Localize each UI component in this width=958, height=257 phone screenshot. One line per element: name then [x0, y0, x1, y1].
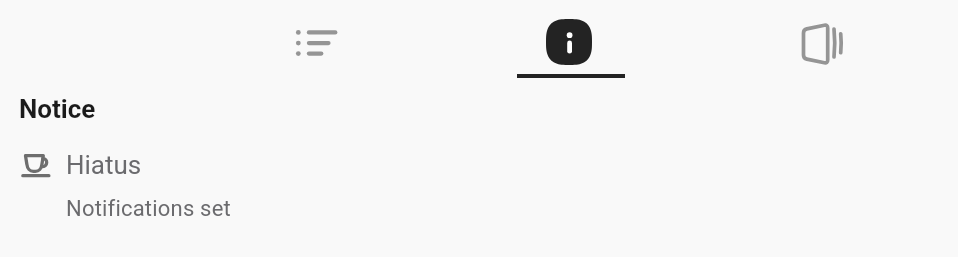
button[interactable]: Hiatus [0, 146, 958, 228]
button[interactable]: Sort order [189, 8, 442, 78]
button[interactable]: Sound [695, 8, 948, 78]
button[interactable]: Info [442, 8, 695, 78]
staticText: Notice [19, 94, 96, 124]
staticText: Hiatus [66, 150, 142, 180]
staticText: Notifications set [66, 196, 231, 222]
